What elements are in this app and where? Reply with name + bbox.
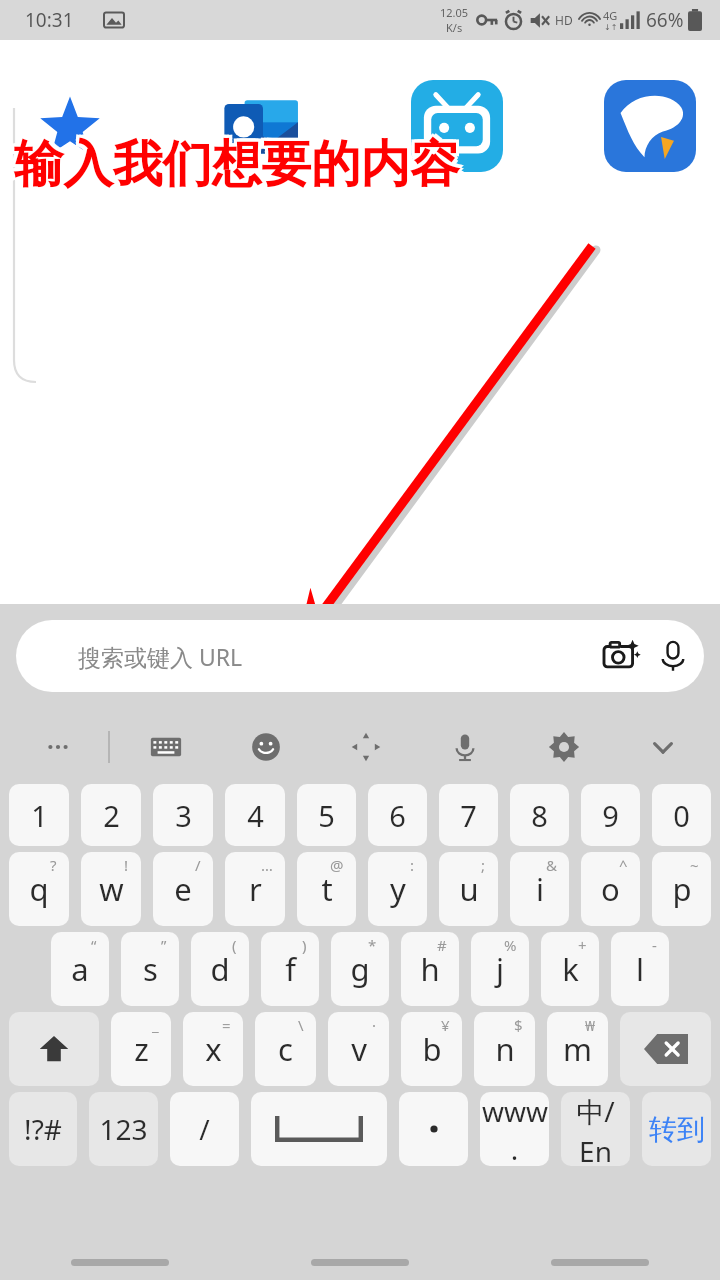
- staticText: #: [437, 935, 447, 955]
- button[interactable]: g: [331, 932, 389, 1006]
- staticText: 66%: [646, 7, 684, 33]
- button[interactable]: App: [604, 80, 696, 172]
- staticText: z: [134, 1028, 149, 1070]
- button[interactable]: !?#: [9, 1092, 77, 1166]
- button[interactable]: App: [217, 80, 309, 172]
- button[interactable]: u: [439, 852, 498, 926]
- button[interactable]: n: [474, 1012, 535, 1086]
- staticText: K/s: [446, 20, 463, 35]
- button[interactable]: w: [81, 852, 141, 926]
- staticText: 转到: [649, 1112, 705, 1147]
- button[interactable]: Space: [251, 1092, 387, 1166]
- button[interactable]: Lens camera search: [594, 629, 648, 683]
- button[interactable]: s: [121, 932, 179, 1006]
- staticText: w: [99, 868, 124, 910]
- staticText: ¥: [441, 1015, 450, 1035]
- staticText: m: [563, 1028, 592, 1070]
- button[interactable]: 转到: [642, 1092, 711, 1166]
- button[interactable]: c: [255, 1012, 316, 1086]
- button[interactable]: 3: [153, 784, 213, 846]
- button[interactable]: z: [111, 1012, 171, 1086]
- staticText: h: [420, 948, 440, 990]
- button[interactable]: www.: [480, 1092, 549, 1166]
- button[interactable]: 0: [652, 784, 711, 846]
- staticText: ;: [481, 855, 486, 875]
- button[interactable]: b: [401, 1012, 462, 1086]
- button[interactable]: Keyboard layout: [116, 712, 216, 782]
- staticText: a: [71, 948, 89, 990]
- button[interactable]: q: [9, 852, 69, 926]
- staticText: HD: [555, 12, 573, 28]
- button[interactable]: Backspace: [620, 1012, 711, 1086]
- button[interactable]: y: [368, 852, 427, 926]
- button[interactable]: r: [225, 852, 285, 926]
- button[interactable]: 8: [510, 784, 569, 846]
- button[interactable]: 中/En: [561, 1092, 630, 1166]
- button[interactable]: Recents: [0, 1224, 240, 1280]
- staticText: v: [351, 1028, 367, 1070]
- button[interactable]: j: [471, 932, 529, 1006]
- button[interactable]: /: [170, 1092, 239, 1166]
- button[interactable]: 5: [297, 784, 356, 846]
- staticText: &: [546, 855, 557, 875]
- button[interactable]: x: [183, 1012, 243, 1086]
- staticText: f: [285, 948, 296, 990]
- button[interactable]: Settings: [514, 712, 613, 782]
- staticText: 输入我们想要的内容: [14, 136, 460, 198]
- button[interactable]: Home: [240, 1224, 480, 1280]
- button[interactable]: v: [328, 1012, 389, 1086]
- staticText: !?#: [24, 1110, 62, 1148]
- button[interactable]: o: [581, 852, 640, 926]
- staticText: …: [261, 855, 273, 875]
- button[interactable]: 搜索或键入 URL: [16, 620, 704, 692]
- staticText: 输入我们想要的内容: [17, 130, 463, 192]
- staticText: x: [205, 1028, 222, 1070]
- button[interactable]: Voice search: [648, 628, 698, 684]
- button[interactable]: 6: [368, 784, 427, 846]
- button[interactable]: More options: [8, 712, 108, 782]
- button[interactable]: 123: [89, 1092, 158, 1166]
- button[interactable]: i: [510, 852, 569, 926]
- button[interactable]: k: [541, 932, 599, 1006]
- button[interactable]: 4: [225, 784, 285, 846]
- button[interactable]: 1: [9, 784, 69, 846]
- staticText: 8: [531, 796, 548, 835]
- button[interactable]: Voice input: [415, 712, 514, 782]
- staticText: 输入我们想要的内容: [11, 133, 457, 195]
- button[interactable]: Back: [480, 1224, 720, 1280]
- button[interactable]: [399, 1092, 468, 1166]
- staticText: (: [232, 935, 237, 955]
- button[interactable]: Emoji: [216, 712, 316, 782]
- button[interactable]: Shift: [9, 1012, 99, 1086]
- staticText: k: [562, 948, 579, 990]
- button[interactable]: App: [24, 80, 116, 172]
- button[interactable]: l: [611, 932, 669, 1006]
- button[interactable]: App: [411, 80, 503, 172]
- staticText: ”: [161, 935, 167, 955]
- button[interactable]: d: [191, 932, 249, 1006]
- staticText: 中/En: [561, 1092, 630, 1166]
- button[interactable]: h: [401, 932, 459, 1006]
- staticText: -: [652, 935, 657, 955]
- button[interactable]: p: [652, 852, 711, 926]
- button[interactable]: 9: [581, 784, 640, 846]
- staticText: ↓↑: [604, 23, 618, 32]
- button[interactable]: t: [297, 852, 356, 926]
- staticText: ?: [50, 855, 57, 875]
- button[interactable]: f: [261, 932, 319, 1006]
- staticText: 搜索或键入 URL: [78, 641, 594, 672]
- button[interactable]: 2: [81, 784, 141, 846]
- button[interactable]: m: [547, 1012, 608, 1086]
- staticText: ^: [619, 855, 628, 875]
- button[interactable]: a: [51, 932, 109, 1006]
- staticText: g: [350, 948, 370, 990]
- button[interactable]: 7: [439, 784, 498, 846]
- button[interactable]: Hide keyboard: [613, 712, 712, 782]
- staticText: 输入我们想要的内容: [11, 136, 457, 198]
- staticText: 2: [103, 796, 120, 835]
- staticText: !: [124, 855, 129, 875]
- button[interactable]: e: [153, 852, 213, 926]
- button[interactable]: Move cursor: [316, 712, 415, 782]
- staticText: i: [536, 868, 544, 910]
- staticText: e: [174, 868, 192, 910]
